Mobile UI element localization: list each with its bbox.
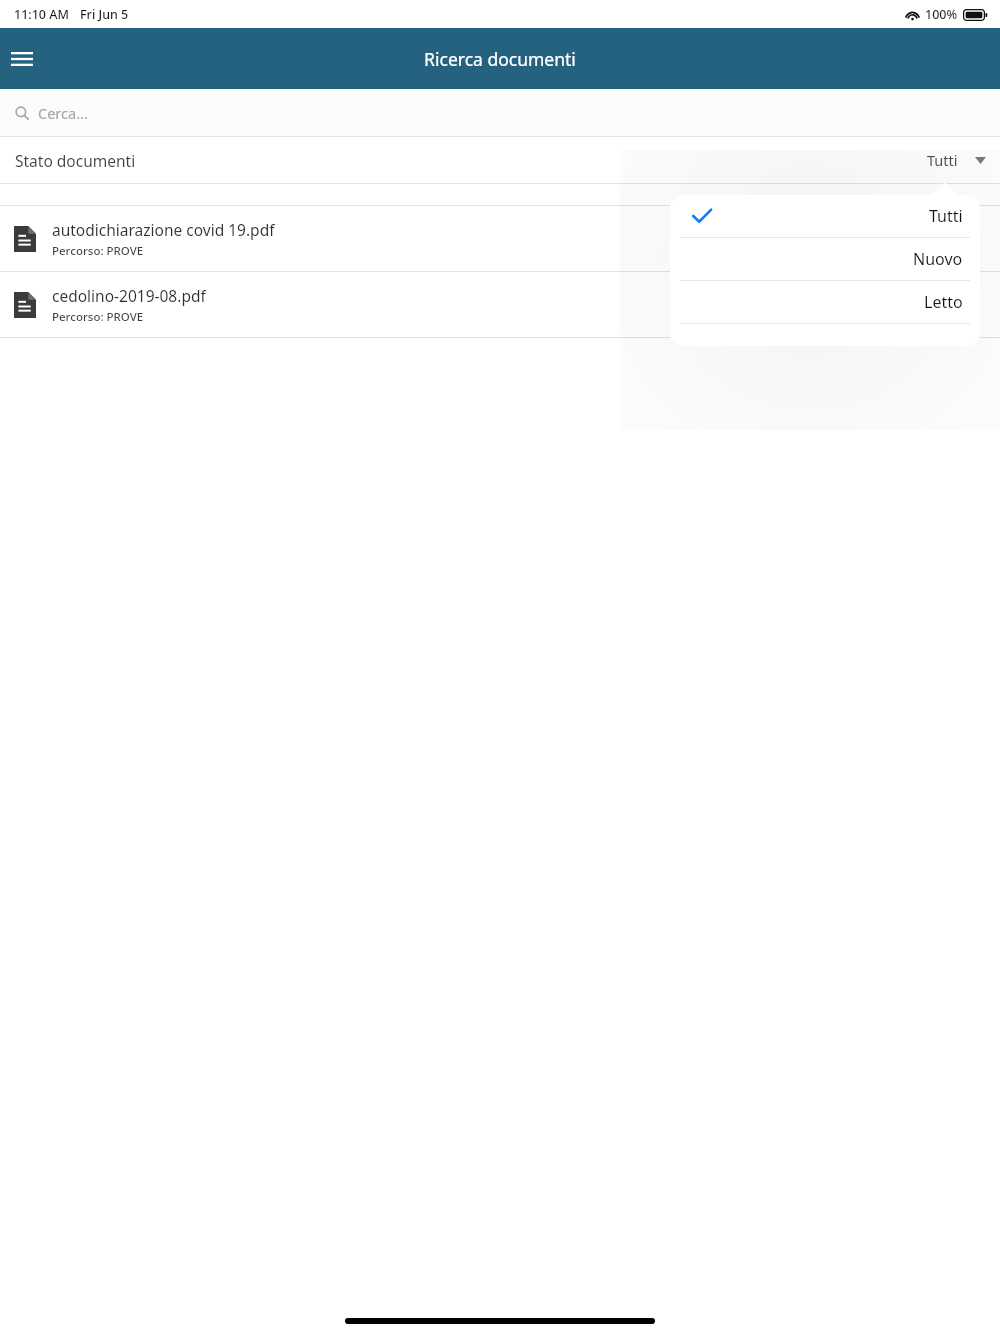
button[interactable]: Menu <box>0 37 44 81</box>
staticText: Cerca... <box>38 103 88 123</box>
staticText: Letto <box>924 291 963 313</box>
staticText: Stato documenti <box>15 150 136 171</box>
button[interactable]: cedolino-2019-08.pdf <box>0 272 1000 337</box>
button[interactable]: Letto <box>670 281 980 323</box>
button[interactable]: Tutti <box>670 195 980 237</box>
staticText: Ricerca documenti <box>424 47 576 71</box>
staticText: Percorso: PROVE <box>52 309 144 325</box>
staticText: Tutti <box>929 205 963 227</box>
staticText: Tutti <box>927 150 958 170</box>
staticText: Percorso: PROVE <box>52 243 144 259</box>
button[interactable]: Nuovo <box>670 238 980 280</box>
staticText: Nuovo <box>913 248 963 270</box>
staticText: autodichiarazione covid 19.pdf <box>52 219 275 240</box>
staticText: cedolino-2019-08.pdf <box>52 285 206 306</box>
button[interactable]: autodichiarazione covid 19.pdf <box>0 206 1000 271</box>
staticText: Fri Jun 5 <box>80 6 129 23</box>
button[interactable]: Stato documenti <box>0 137 1000 183</box>
button[interactable]: Cerca... <box>0 89 1000 136</box>
staticText: 100% <box>925 6 958 23</box>
staticText: 11:10 AM <box>14 6 69 23</box>
